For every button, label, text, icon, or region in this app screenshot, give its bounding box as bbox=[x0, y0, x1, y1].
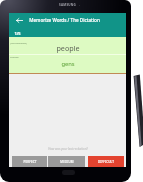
staticText: MEDIUM bbox=[60, 160, 74, 164]
staticText: 1/5 bbox=[14, 31, 21, 36]
staticText: SAMSUNG bbox=[59, 3, 76, 7]
staticText: DIFFICULT bbox=[98, 160, 114, 164]
staticText: Memorize Words / The Dictation bbox=[29, 17, 100, 23]
button[interactable]: MEDIUM bbox=[48, 156, 85, 167]
staticText: PERFECT bbox=[23, 160, 37, 164]
button[interactable]: PERFECT bbox=[12, 156, 47, 167]
staticText: people bbox=[56, 43, 80, 53]
button[interactable] bbox=[9, 13, 126, 37]
button[interactable]: Back bbox=[12, 13, 27, 27]
staticText: How was your last recitation? bbox=[48, 147, 88, 151]
staticText: gens bbox=[61, 60, 75, 68]
staticText: (The translation) bbox=[10, 42, 27, 45]
staticText: Français bbox=[10, 56, 19, 59]
button[interactable]: DIFFICULT bbox=[88, 156, 124, 167]
